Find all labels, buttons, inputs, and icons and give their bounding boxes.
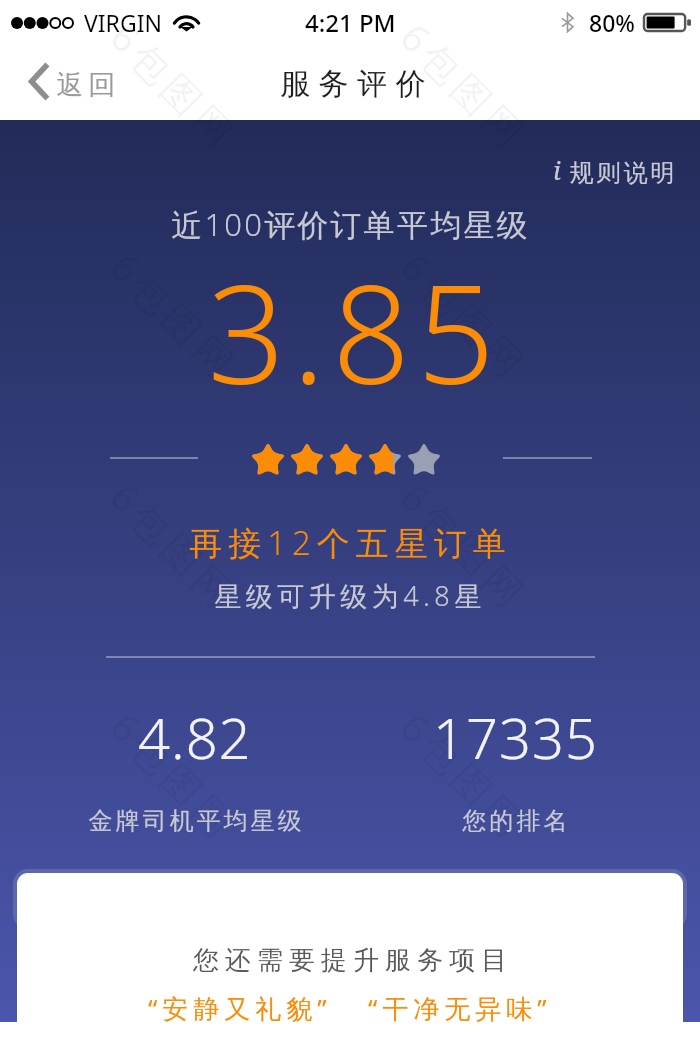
staticText: 6包图网 <box>390 471 540 621</box>
staticText: “干净无异味” <box>368 990 552 1026</box>
staticText: i <box>553 152 561 187</box>
staticText: 6包图网 <box>100 11 250 161</box>
staticText: 17335 <box>433 699 598 775</box>
staticText: 6包图网 <box>100 931 250 1053</box>
staticText: 规则说明 <box>568 158 676 188</box>
staticText: 星级可升级为4.8星 <box>214 577 486 614</box>
staticText: 3.85 <box>207 239 502 424</box>
staticText: 再接12个五星订单 <box>189 520 512 565</box>
staticText: 金牌司机平均星级 <box>87 806 303 836</box>
staticText: “安静又礼貌” <box>148 990 332 1026</box>
staticText: 6包图网 <box>390 11 540 161</box>
staticText: 6包图网 <box>100 471 250 621</box>
staticText: VIRGIN <box>84 7 162 38</box>
staticText: 6包图网 <box>390 701 540 851</box>
staticText: 近100评价订单平均星级 <box>171 203 530 245</box>
staticText: 返回 <box>54 68 118 102</box>
staticText: 您还需要提升服务项目 <box>190 944 510 977</box>
staticText: 服务评价 <box>276 65 430 103</box>
button[interactable]: 您还需要提升服务项目 <box>17 873 683 1053</box>
staticText: 6包图网 <box>100 701 250 851</box>
staticText: 您的排名 <box>461 806 569 836</box>
staticText: 4.82 <box>138 699 252 775</box>
staticText: 6包图网 <box>390 931 540 1053</box>
staticText: 80% <box>589 7 635 38</box>
staticText: 6包图网 <box>390 241 540 391</box>
button[interactable]: i <box>533 147 700 194</box>
button[interactable]: 返回 <box>0 60 140 111</box>
staticText: 4:21 PM <box>305 6 396 39</box>
staticText: 6包图网 <box>100 241 250 391</box>
